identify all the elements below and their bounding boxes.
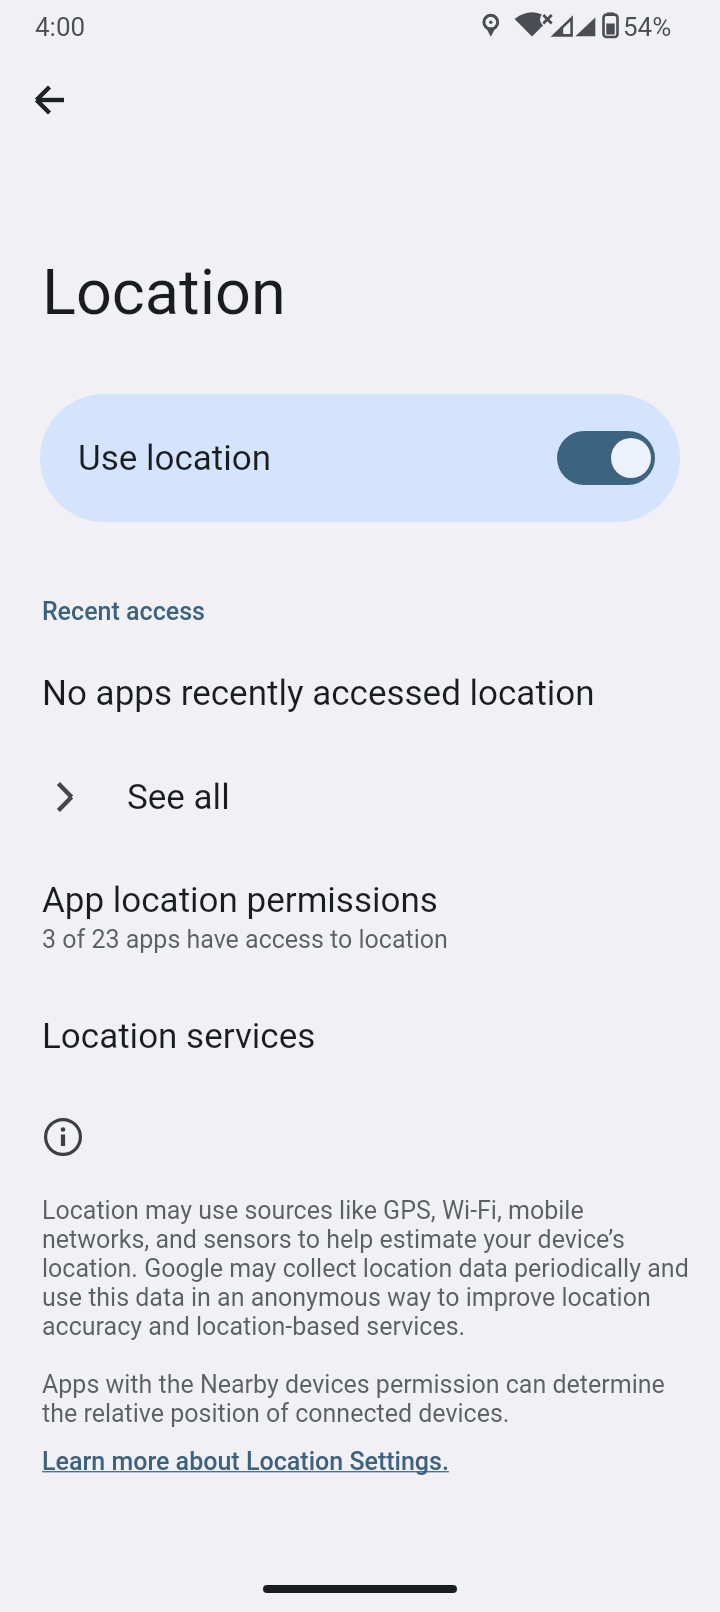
staticText: Location — [42, 256, 286, 330]
staticText: Recent access — [42, 597, 205, 626]
button[interactable]: See all — [40, 767, 680, 827]
staticText: 54% — [623, 12, 672, 42]
button[interactable] — [26, 76, 74, 124]
staticText: 3 of 23 apps have access to location — [42, 925, 448, 954]
button[interactable]: Learn more about Location Settings. — [40, 1445, 451, 1478]
staticText: See all — [127, 777, 230, 818]
staticText: No apps recently accessed location — [42, 673, 595, 714]
staticText: Use location — [78, 438, 272, 479]
staticText: Location services — [42, 1016, 316, 1057]
staticText: 4:00 — [35, 12, 86, 42]
button[interactable]: Use location — [40, 394, 680, 522]
button[interactable]: Location services — [40, 1000, 680, 1070]
staticText: Learn more about Location Settings. — [42, 1447, 449, 1476]
staticText: App location permissions — [42, 880, 438, 921]
staticText: Location may use sources like GPS, Wi-Fi… — [42, 1196, 702, 1341]
staticText: Apps with the Nearby devices permission … — [42, 1370, 702, 1428]
button[interactable]: App location permissions — [40, 880, 680, 954]
